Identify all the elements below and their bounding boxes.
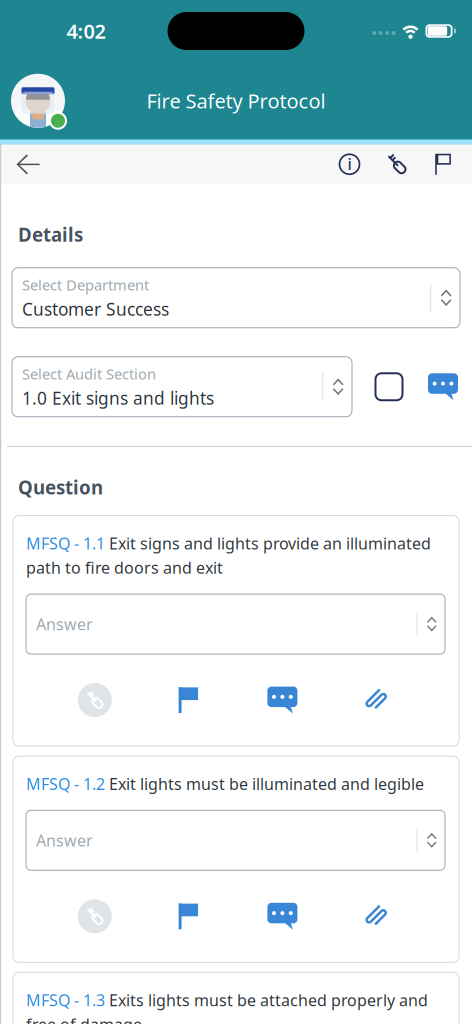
button[interactable]: Comment: [257, 681, 307, 719]
button[interactable]: Attachment: [351, 681, 401, 719]
staticText: Question: [18, 475, 103, 500]
button[interactable]: Key: [70, 681, 120, 719]
button[interactable]: Select Department: [12, 268, 460, 328]
button[interactable]: Answer: [26, 594, 445, 654]
staticText: Fire Safety Protocol: [146, 87, 325, 114]
button[interactable]: Key: [70, 897, 120, 935]
staticText: Details: [18, 222, 83, 247]
staticText: 1.0 Exit signs and lights: [22, 386, 214, 409]
button[interactable]: Answer: [26, 810, 445, 870]
button[interactable]: Back: [0, 145, 40, 184]
button[interactable]: Comment: [426, 371, 460, 403]
staticText: Select Department: [22, 275, 149, 294]
button[interactable]: Select Audit Section: [12, 357, 352, 417]
button[interactable]: Flag: [420, 145, 467, 184]
staticText: MFSQ - 1.3 Exits lights must be attached…: [26, 989, 428, 1024]
button[interactable]: Comment: [257, 897, 307, 935]
button[interactable]: Flag: [164, 897, 214, 935]
staticText: Answer: [36, 613, 93, 635]
button[interactable]: Checkbox: [368, 366, 410, 408]
button[interactable]: Flag: [164, 681, 214, 719]
staticText: Answer: [36, 830, 93, 851]
button[interactable]: Profile: [0, 73, 66, 129]
staticText: Customer Success: [22, 297, 169, 320]
staticText: MFSQ - 1.2 Exit lights must be illuminat…: [26, 773, 424, 794]
button[interactable]: Information: [326, 145, 373, 184]
staticText: Select Audit Section: [22, 364, 156, 383]
button[interactable]: Key: [373, 145, 420, 184]
button[interactable]: Attachment: [351, 897, 401, 935]
staticText: i: [347, 153, 351, 174]
staticText: MFSQ - 1.1 Exit signs and lights provide…: [26, 533, 431, 578]
staticText: 4:02: [66, 18, 105, 44]
